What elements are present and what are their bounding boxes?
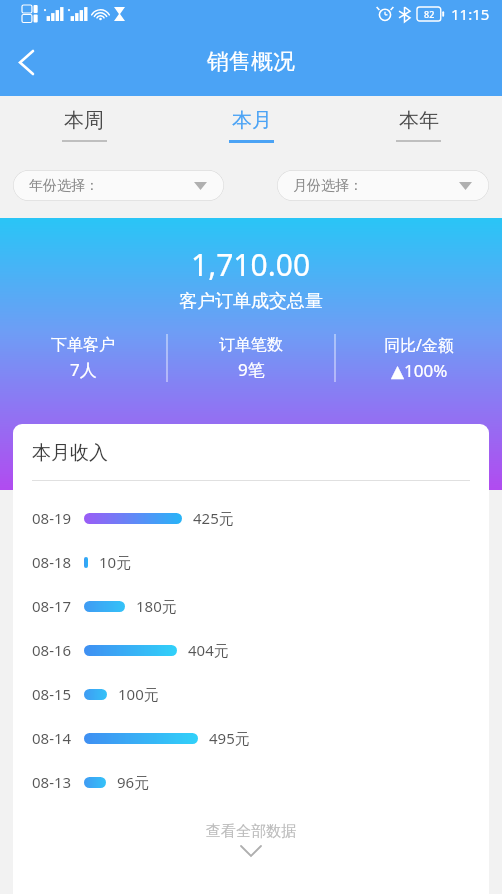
staticText: 08-15 [32, 684, 72, 704]
staticText: 本周 [64, 108, 104, 133]
staticText: 本月 [232, 108, 272, 133]
staticText: 08-13 [32, 772, 72, 792]
staticText: 96元 [117, 772, 150, 792]
staticText: 销售概况 [207, 48, 295, 76]
staticText: 1,710.00 [191, 244, 311, 285]
staticText: 10元 [99, 552, 132, 572]
staticText: 同比/金额 [384, 334, 454, 356]
staticText: 7人 [70, 358, 97, 381]
staticText: 100元 [118, 684, 159, 704]
button[interactable]: 查看全部数据 [13, 822, 489, 856]
button[interactable]: 08-14 [13, 716, 489, 760]
staticText: 08-14 [32, 728, 72, 748]
staticText: 订单笔数 [219, 335, 283, 355]
staticText: 下单客户 [51, 335, 115, 355]
button[interactable]: 08-13 [13, 760, 489, 804]
staticText: 本月收入 [32, 441, 108, 465]
staticText: 495元 [209, 728, 250, 748]
staticText: 客户订单成交总量 [179, 290, 323, 313]
staticText: 11:15 [451, 4, 490, 24]
staticText: 查看全部数据 [206, 822, 296, 841]
button[interactable]: 08-16 [13, 628, 489, 672]
staticText: 425元 [193, 508, 234, 528]
staticText: 08-17 [32, 596, 72, 616]
staticText: 9笔 [238, 358, 265, 381]
button[interactable]: 08-17 [13, 584, 489, 628]
staticText: 本年 [399, 108, 439, 133]
staticText: 180元 [136, 596, 177, 616]
button[interactable]: Back [0, 36, 52, 88]
button[interactable]: 本周 [0, 108, 168, 142]
staticText: 年份选择： [29, 177, 99, 195]
staticText: 82 [424, 8, 435, 20]
staticText: 月份选择： [293, 177, 363, 195]
button[interactable]: 月份选择： [277, 170, 489, 201]
button[interactable]: 本年 [335, 108, 502, 142]
staticText: 08-19 [32, 508, 72, 528]
staticText: ▲100% [391, 359, 448, 382]
button[interactable]: 年份选择： [13, 170, 224, 201]
button[interactable]: 08-19 [13, 496, 489, 540]
button[interactable]: 08-18 [13, 540, 489, 584]
staticText: 08-18 [32, 552, 72, 572]
staticText: 404元 [188, 640, 229, 660]
button[interactable]: 本月 [168, 108, 335, 143]
button[interactable]: 08-15 [13, 672, 489, 716]
staticText: 08-16 [32, 640, 72, 660]
